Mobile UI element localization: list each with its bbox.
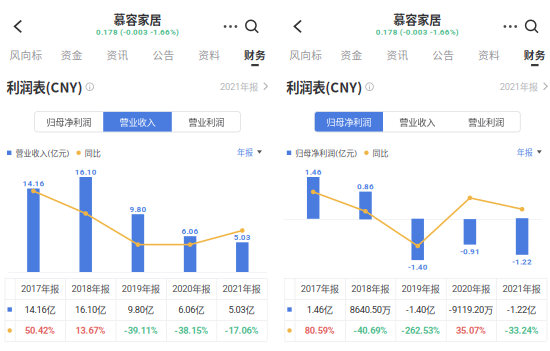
staticText: 资金 — [61, 47, 83, 62]
staticText: -1.40 — [408, 262, 428, 272]
staticText: 慕容家居 — [113, 11, 161, 28]
staticText: 2019年报 — [402, 282, 440, 295]
staticText: 同比 — [373, 147, 389, 159]
staticText: 年报 — [517, 146, 533, 158]
button[interactable]: 风向标 — [3, 45, 49, 67]
button[interactable]: Search — [240, 14, 264, 38]
button[interactable]: Back — [1, 11, 35, 41]
staticText: 16.10 — [75, 167, 97, 177]
button[interactable]: 财务 — [232, 45, 278, 67]
staticText: 利润表(CNY) — [286, 77, 362, 96]
staticText: 5.03 — [234, 233, 251, 242]
staticText: 2021年报 — [220, 80, 258, 93]
staticText: 归母净利润 — [326, 115, 371, 128]
staticText: 2021年报 — [500, 80, 538, 93]
button[interactable]: 营业收入 — [383, 111, 452, 132]
staticText: 2020年报 — [452, 282, 490, 295]
button[interactable]: More — [217, 14, 243, 38]
staticText: 财务 — [244, 47, 266, 62]
staticText: 35.07% — [456, 325, 486, 336]
button[interactable]: 资料 — [186, 45, 232, 67]
staticText: 营业收入(亿元) — [15, 147, 69, 159]
staticText: 13.67% — [75, 325, 105, 336]
staticText: -1.40亿 — [406, 303, 435, 316]
staticText: 资料 — [198, 47, 220, 62]
staticText: 50.42% — [25, 325, 55, 336]
staticText: 8640.50万 — [350, 303, 391, 316]
staticText: -1.22亿 — [507, 303, 536, 316]
staticText: 财务 — [524, 47, 546, 62]
button[interactable]: 财务 — [512, 45, 550, 67]
button[interactable]: 年报 — [237, 146, 262, 158]
staticText: 营业利润 — [468, 115, 504, 128]
staticText: 6.06亿 — [178, 303, 204, 316]
button[interactable]: 2021年报 — [500, 78, 549, 94]
staticText: 营业收入 — [120, 115, 156, 128]
staticText: -39.11% — [124, 325, 158, 336]
staticText: 0.178 (-0.003 -1.66%) — [96, 27, 179, 37]
staticText: 0.178 (-0.003 -1.66%) — [376, 27, 459, 37]
button[interactable]: 营业利润 — [172, 111, 241, 132]
button[interactable]: 公告 — [140, 45, 186, 67]
staticText: -262.53% — [401, 325, 440, 336]
staticText: 2019年报 — [122, 282, 160, 295]
button[interactable]: 归母净利润 — [314, 111, 383, 132]
staticText: -17.06% — [225, 325, 259, 336]
staticText: 2018年报 — [351, 282, 389, 295]
staticText: 资料 — [478, 47, 500, 62]
staticText: 资讯 — [386, 47, 408, 62]
staticText: 14.16亿 — [24, 303, 55, 316]
button[interactable]: 营业利润 — [452, 111, 520, 132]
staticText: 9.80 — [129, 204, 146, 214]
staticText: 公告 — [152, 47, 174, 62]
button[interactable]: Back — [281, 11, 315, 41]
staticText: 1.46亿 — [307, 303, 333, 316]
staticText: 14.16 — [22, 179, 44, 188]
staticText: 5.03亿 — [229, 303, 255, 316]
button[interactable]: 2021年报 — [220, 78, 269, 94]
staticText: -1.22 — [512, 257, 532, 266]
button[interactable]: 资料 — [466, 45, 512, 67]
staticText: 利润表(CNY) — [6, 77, 82, 96]
staticText: -33.24% — [504, 325, 538, 336]
button[interactable]: Search — [520, 14, 544, 38]
staticText: 9.80亿 — [128, 303, 154, 316]
button[interactable]: 资讯 — [95, 45, 141, 67]
button[interactable]: 归母净利润 — [34, 111, 103, 132]
button[interactable]: 资金 — [49, 45, 95, 67]
staticText: 归母净利润 — [46, 115, 91, 128]
button[interactable]: 资讯 — [374, 45, 420, 67]
staticText: 0.86 — [357, 182, 374, 191]
staticText: 公告 — [432, 47, 454, 62]
staticText: 风向标 — [9, 47, 42, 62]
staticText: 慕容家居 — [393, 11, 441, 28]
staticText: 2018年报 — [71, 282, 109, 295]
staticText: 营业利润 — [188, 115, 224, 128]
staticText: 2021年报 — [223, 282, 261, 295]
staticText: 2017年报 — [301, 282, 339, 295]
button[interactable]: 公告 — [420, 45, 466, 67]
staticText: 6.06 — [182, 226, 199, 236]
staticText: 资讯 — [107, 47, 129, 62]
staticText: -0.91 — [460, 247, 480, 256]
staticText: 2017年报 — [21, 282, 59, 295]
button[interactable]: 资金 — [329, 45, 375, 67]
staticText: -40.69% — [353, 325, 387, 336]
staticText: 同比 — [85, 147, 101, 159]
staticText: 1.46 — [305, 167, 322, 177]
button[interactable]: 风向标 — [283, 45, 329, 67]
staticText: 归母净利润(亿元) — [295, 147, 357, 159]
staticText: 年报 — [237, 146, 253, 158]
button[interactable]: More — [497, 14, 523, 38]
button[interactable]: 营业收入 — [103, 111, 172, 132]
staticText: 80.59% — [305, 325, 335, 336]
button[interactable]: 年报 — [517, 146, 542, 158]
staticText: 2021年报 — [502, 282, 540, 295]
staticText: 16.10亿 — [75, 303, 106, 316]
staticText: 资金 — [341, 47, 363, 62]
staticText: -38.15% — [174, 325, 208, 336]
staticText: 营业收入 — [399, 115, 435, 128]
staticText: -9119.20万 — [449, 303, 493, 316]
staticText: 风向标 — [289, 47, 322, 62]
staticText: 2020年报 — [172, 282, 210, 295]
